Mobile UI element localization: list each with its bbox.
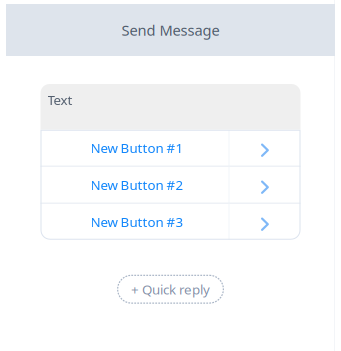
staticText: New Button #2 xyxy=(90,176,183,194)
staticText: + Quick reply xyxy=(131,280,210,298)
staticText: New Button #1 xyxy=(90,139,183,157)
button[interactable]: New Button #3 xyxy=(40,204,300,240)
button[interactable]: New Button #1 xyxy=(40,130,300,166)
button[interactable]: Send Message xyxy=(6,4,335,56)
button[interactable]: + Quick reply xyxy=(117,275,224,304)
staticText: Text xyxy=(47,91,72,109)
staticText: Send Message xyxy=(121,20,219,40)
staticText: New Button #3 xyxy=(90,213,183,231)
button[interactable]: New Button #2 xyxy=(40,167,300,203)
